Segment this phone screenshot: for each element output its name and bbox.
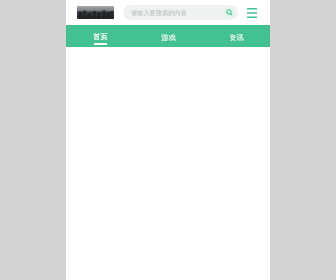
staticText: 资讯 [229, 33, 244, 42]
button[interactable]: Menu [245, 6, 259, 20]
button[interactable]: 请输入要搜索的内容 [123, 5, 238, 20]
staticText: 首页 [93, 32, 108, 41]
button[interactable]: Site logo, home [77, 6, 114, 19]
other: Search [224, 7, 235, 18]
staticText: 请输入要搜索的内容 [131, 9, 224, 17]
button[interactable]: 游戏 [134, 25, 202, 47]
button[interactable]: 资讯 [202, 25, 270, 47]
staticText: 游戏 [161, 33, 176, 42]
button[interactable]: 首页 [66, 25, 134, 47]
